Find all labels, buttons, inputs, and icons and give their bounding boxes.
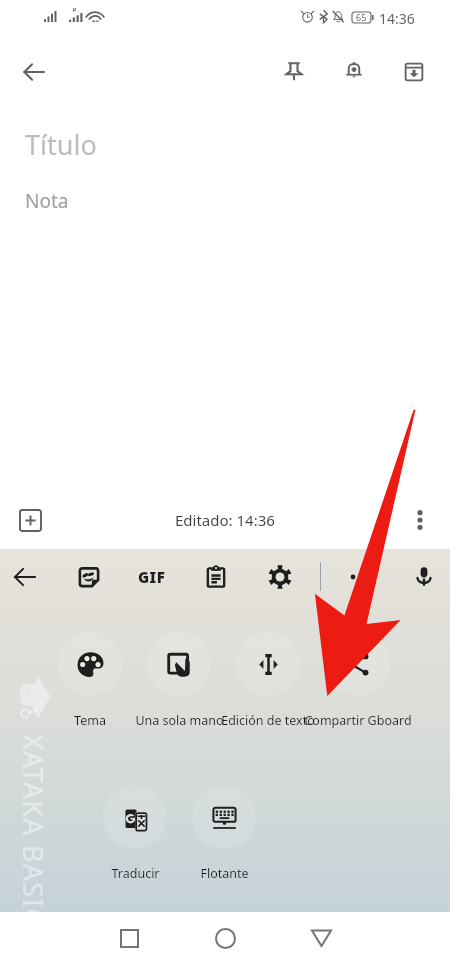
- staticText: Traducir: [111, 865, 160, 882]
- button[interactable]: Una sola mano: [99, 632, 259, 729]
- staticText: Compartir Gboard: [304, 712, 412, 729]
- button[interactable]: Back: [297, 914, 345, 962]
- staticText: Edición de texto: [221, 712, 315, 729]
- staticText: Una sola mano: [135, 712, 224, 729]
- button[interactable]: More options: [398, 498, 442, 542]
- button[interactable]: Archive: [392, 50, 436, 94]
- button[interactable]: Reminder: [332, 50, 376, 94]
- button[interactable]: Home: [201, 914, 249, 962]
- button[interactable]: Compartir Gboard: [278, 632, 438, 729]
- staticText: Título: [25, 126, 97, 163]
- button[interactable]: Clipboard: [197, 558, 235, 596]
- staticText: GIF: [138, 567, 166, 587]
- button[interactable]: Add: [8, 498, 52, 542]
- button[interactable]: Traducir: [55, 785, 215, 882]
- staticText: XATAKA BASICS: [15, 734, 52, 943]
- staticText: Editado: 14:36: [175, 510, 275, 530]
- button[interactable]: Flotante: [144, 785, 304, 882]
- button[interactable]: GIF: [133, 558, 171, 596]
- staticText: 14:36: [379, 9, 415, 28]
- button[interactable]: Recents: [105, 914, 153, 962]
- button[interactable]: Stickers: [70, 558, 108, 596]
- staticText: 65: [356, 11, 367, 23]
- button[interactable]: Voice input: [405, 558, 443, 596]
- button[interactable]: More: [334, 558, 372, 596]
- staticText: Nota: [25, 188, 69, 214]
- button[interactable]: Settings: [261, 558, 299, 596]
- button[interactable]: Pin: [272, 50, 316, 94]
- button[interactable]: Tema: [10, 632, 170, 729]
- staticText: Flotante: [200, 865, 249, 882]
- button[interactable]: Back: [12, 50, 56, 94]
- staticText: Tema: [74, 712, 106, 729]
- button[interactable]: Back: [6, 558, 44, 596]
- button[interactable]: Edición de texto: [188, 632, 348, 729]
